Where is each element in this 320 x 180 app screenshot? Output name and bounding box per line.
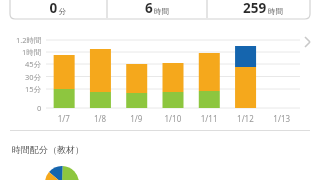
button[interactable]: Study time summary	[0, 0, 320, 180]
